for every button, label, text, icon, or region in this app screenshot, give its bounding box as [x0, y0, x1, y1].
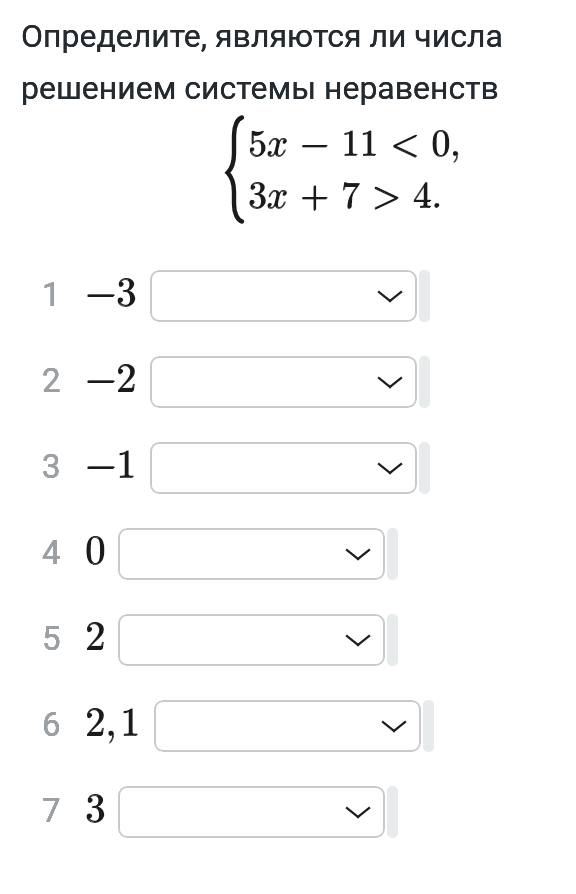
staticText: −2: [85, 360, 137, 400]
button[interactable]: Выбрать ответ 7: [118, 786, 385, 838]
button[interactable]: Выбрать ответ 5: [118, 614, 385, 666]
button[interactable]: Выбрать ответ 6: [154, 700, 421, 752]
staticText: 5: [42, 619, 61, 658]
staticText: −3: [85, 273, 137, 313]
staticText: 7: [42, 791, 61, 830]
staticText: −3: [85, 274, 137, 314]
staticText: 3: [42, 447, 61, 486]
staticText: 5𝑥 − 11 < 0,: [248, 125, 461, 162]
staticText: 0: [85, 531, 105, 571]
staticText: Определите, являются ли числа: [21, 17, 503, 55]
staticText: −1: [85, 445, 137, 485]
staticText: 3𝑥 + 7 > 4.: [248, 177, 442, 214]
staticText: 6: [42, 705, 61, 744]
staticText: 2: [85, 618, 105, 658]
staticText: 3: [86, 789, 106, 829]
staticText: −2: [85, 359, 137, 399]
staticText: 3𝑥 + 7 > 4.: [248, 178, 442, 215]
button[interactable]: Выбрать ответ 4: [118, 528, 385, 580]
staticText: 4: [42, 533, 61, 572]
staticText: решением системы неравенств: [21, 69, 499, 107]
staticText: Определите, являются ли числа: [21, 17, 503, 55]
staticText: −3: [86, 273, 138, 313]
staticText: 3: [42, 447, 61, 486]
staticText: 2, 1: [85, 704, 141, 744]
staticText: 2: [42, 361, 61, 400]
staticText: 2, 1: [85, 703, 141, 743]
staticText: 1: [42, 275, 61, 314]
staticText: 5: [42, 619, 61, 658]
staticText: 5: [42, 619, 61, 658]
staticText: 6: [42, 705, 61, 744]
staticText: 0: [85, 532, 105, 572]
button[interactable]: Выбрать ответ 2: [150, 356, 417, 408]
staticText: 4: [42, 533, 61, 572]
staticText: 3𝑥 + 7 > 4.: [249, 177, 443, 214]
staticText: −1: [85, 446, 137, 486]
staticText: 2, 1: [86, 703, 142, 743]
staticText: 7: [42, 791, 61, 830]
staticText: −2: [86, 359, 138, 399]
staticText: 5𝑥 − 11 < 0,: [248, 126, 461, 163]
staticText: 3: [85, 789, 105, 829]
button[interactable]: Выбрать ответ 3: [150, 442, 417, 494]
staticText: 1: [42, 275, 61, 314]
staticText: 1: [42, 275, 61, 314]
staticText: Определите, являются ли числа: [21, 17, 503, 55]
staticText: 4: [42, 533, 61, 572]
staticText: −1: [86, 445, 138, 485]
staticText: решением системы неравенств: [21, 69, 499, 107]
staticText: 2: [42, 361, 61, 400]
staticText: 7: [42, 791, 61, 830]
staticText: 0: [86, 531, 106, 571]
staticText: 2: [85, 617, 105, 657]
staticText: 3: [85, 790, 105, 830]
staticText: 5𝑥 − 11 < 0,: [249, 125, 462, 162]
staticText: 2: [86, 617, 106, 657]
button[interactable]: Выбрать ответ 1: [150, 270, 417, 322]
staticText: решением системы неравенств: [21, 69, 499, 107]
staticText: 6: [42, 705, 61, 744]
staticText: 2: [42, 361, 61, 400]
staticText: 3: [42, 447, 61, 486]
